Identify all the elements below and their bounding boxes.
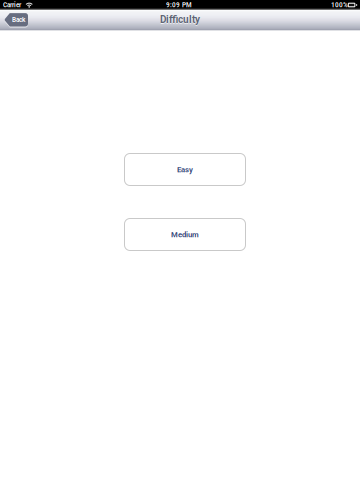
button[interactable]: Easy [124,153,245,185]
staticText: Back [12,16,25,23]
staticText: Carrier [3,1,21,9]
staticText: Easy [177,165,193,174]
staticText: Medium [171,230,199,239]
staticText: Difficulty [160,14,200,26]
button[interactable]: Medium [124,218,245,250]
staticText: 9:09 PM [166,1,192,9]
button[interactable]: Back [4,13,28,27]
staticText: Difficulty [160,14,200,25]
staticText: 100% [331,1,348,9]
